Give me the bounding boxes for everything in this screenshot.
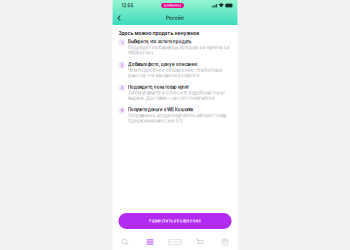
button[interactable]: Каталог [137, 234, 162, 250]
staticText: Разместить объявление [148, 218, 201, 224]
staticText: Ресейл [166, 15, 184, 21]
staticText: Выберите, что хотите продать [128, 39, 191, 44]
button[interactable]: Разместить объявление [118, 213, 231, 229]
staticText: 1 [121, 40, 122, 45]
button[interactable]: Профиль [212, 234, 237, 250]
staticText: Чем подробнее объявление, тем больше шан… [128, 68, 223, 78]
staticText: 12:55 [121, 3, 133, 8]
staticText: 4 [121, 108, 123, 113]
staticText: Затем упакуйте и отнесите в удобный пунк… [128, 90, 225, 101]
staticText: Подождите, пока товар купят [128, 85, 189, 90]
staticText: Здесь можно продать ненужное [118, 30, 199, 36]
button[interactable]: Корзина [187, 234, 212, 250]
staticText: Добавьте фото, цену и описание [128, 62, 197, 67]
staticText: wildberries [163, 4, 181, 7]
staticText: Подойдёт любая вещь, которую не купили н… [128, 45, 229, 55]
staticText: Wildberries [169, 241, 181, 243]
button[interactable]: Магазин [162, 234, 187, 250]
staticText: Отправим их, когда покупатель заберёт то… [128, 113, 228, 123]
staticText: 2 [121, 63, 123, 67]
button[interactable]: Поиск [112, 234, 137, 250]
button[interactable]: Назад [112, 11, 126, 25]
staticText: Получите деньги в WB Кошелёк [128, 107, 193, 112]
staticText: 3 [121, 86, 123, 90]
